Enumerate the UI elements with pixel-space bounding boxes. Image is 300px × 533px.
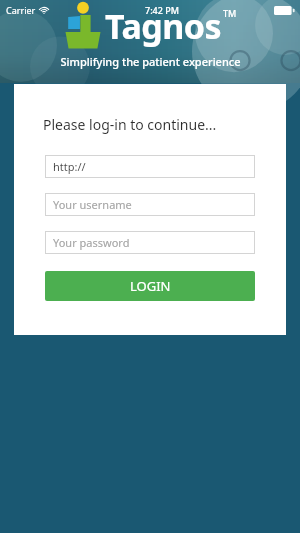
- staticText: TM: [223, 7, 237, 19]
- staticText: Tagnos: [105, 3, 222, 49]
- button[interactable]: LOGIN: [45, 271, 255, 301]
- staticText: Your username: [53, 197, 132, 212]
- button[interactable]: http://: [45, 155, 255, 178]
- staticText: Carrier: [6, 4, 36, 16]
- button[interactable]: Your password: [45, 231, 255, 254]
- staticText: 7:42 PM: [145, 4, 179, 16]
- staticText: Your password: [53, 235, 130, 250]
- staticText: LOGIN: [130, 277, 171, 295]
- staticText: http://: [53, 159, 86, 174]
- staticText: Simplifying the patient experience: [60, 54, 241, 69]
- button[interactable]: Your username: [45, 193, 255, 216]
- staticText: Please log-in to continue...: [43, 115, 217, 134]
